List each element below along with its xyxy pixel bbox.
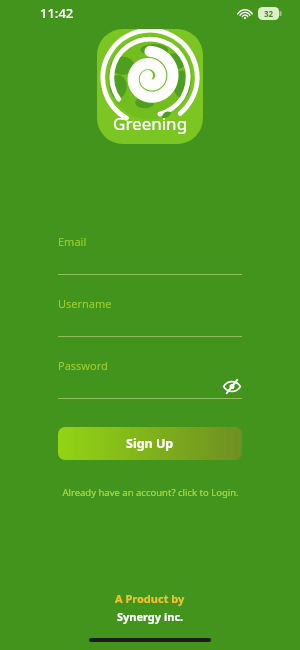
staticText: Synergy inc.	[117, 609, 184, 624]
staticText: 32	[264, 8, 274, 19]
staticText: Greening	[113, 112, 188, 135]
button[interactable]: Already have an account? click to Login.	[58, 486, 242, 499]
button[interactable]: Password	[58, 358, 242, 399]
staticText: A Product by	[115, 591, 185, 606]
staticText: Already have an account? click to Login.	[62, 486, 239, 499]
staticText: Email	[58, 234, 87, 249]
other: Show password	[222, 379, 242, 394]
staticText: Password	[58, 358, 108, 373]
button[interactable]: Email	[58, 234, 242, 275]
button[interactable]: Sign Up	[58, 427, 242, 460]
staticText: Username	[58, 296, 112, 311]
staticText: 11:42	[40, 4, 74, 22]
staticText: Sign Up	[126, 435, 174, 452]
button[interactable]: Username	[58, 296, 242, 337]
